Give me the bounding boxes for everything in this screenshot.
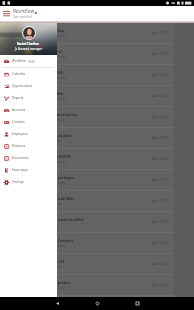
staticText: Question — [49, 265, 62, 269]
staticText: Opportunity — [49, 55, 66, 59]
staticText: Paper KT — [49, 259, 65, 264]
staticText: Jr. Account manager — [15, 47, 43, 51]
staticText: New project — [49, 280, 71, 285]
staticText: Employees — [12, 132, 28, 136]
staticText: Ann Hill — [49, 70, 63, 75]
button[interactable]: Paper KT — [0, 254, 174, 275]
button[interactable]: Marc Jacobst — [0, 128, 174, 149]
button[interactable]: Accounts — [0, 104, 57, 116]
staticText: Apr 14, 2016 — [152, 178, 170, 182]
staticText: Apr 14, 2016 — [152, 241, 170, 245]
staticText: Opportunities — [12, 84, 33, 88]
button[interactable]: Recent apps — [117, 297, 157, 310]
staticText: Bob Kim — [49, 91, 64, 96]
button[interactable]: Calendar — [0, 68, 57, 80]
staticText: New packages — [49, 175, 75, 180]
staticText: Opportunity — [49, 76, 66, 80]
button[interactable]: Anna ROOSE — [0, 149, 174, 170]
button[interactable]: Who made an offer? — [0, 212, 174, 233]
staticText: New Contract — [49, 238, 73, 243]
button[interactable]: Exam apps — [0, 164, 57, 176]
staticText: Rachel Charlton — [17, 42, 40, 46]
button[interactable]: Open navigation drawer — [0, 6, 13, 21]
button[interactable]: Resumes — [0, 140, 57, 152]
staticText: Apr 14, 2016 — [152, 283, 170, 287]
staticText: Accounts — [12, 108, 26, 112]
button[interactable]: Opportunities — [0, 80, 57, 92]
button[interactable]: Documents — [0, 152, 57, 164]
staticText: Contacts — [12, 120, 25, 124]
staticText: Opportunity — [49, 286, 66, 290]
staticText: Dell Incornation — [49, 112, 78, 117]
staticText: Workflow — [12, 59, 26, 63]
button[interactable]: Settings — [0, 176, 57, 188]
button[interactable]: Home — [77, 297, 117, 310]
staticText: Marc Jacobst — [49, 133, 72, 138]
button[interactable]: Deal with Nike — [0, 191, 174, 212]
staticText: Who made an offer? — [49, 217, 84, 222]
staticText: Apr 14, 2016 — [152, 199, 170, 203]
staticText: Opportunity — [49, 118, 66, 122]
staticText: Apr 14, 2016 — [152, 52, 170, 56]
button[interactable]: New packages — [0, 170, 174, 191]
staticText: Documents — [12, 156, 29, 160]
button[interactable]: Workflow — [0, 55, 57, 67]
staticText: Question — [49, 139, 62, 143]
staticText: Date modified — [13, 15, 32, 19]
staticText: Deal with Nike — [49, 196, 75, 201]
staticText: Apr 14, 2016 — [152, 262, 170, 266]
button[interactable]: Contacts — [0, 116, 57, 128]
button[interactable]: New project — [0, 275, 174, 296]
staticText: Settings — [12, 180, 24, 184]
button[interactable]: Follow up — [0, 296, 174, 297]
staticText: Calendar — [12, 72, 26, 76]
staticText: Mark Li — [49, 49, 63, 54]
staticText: Apr 14, 2016 — [152, 94, 170, 98]
staticText: Apr 14, 2016 — [152, 136, 170, 140]
staticText: Opportunity — [49, 181, 66, 185]
staticText: Jane Doe — [49, 28, 65, 33]
button[interactable]: Mark Li — [0, 44, 174, 65]
staticText: Reports — [12, 96, 24, 100]
staticText: Apr 14, 2016 — [152, 157, 170, 161]
button[interactable]: New Contract — [0, 233, 174, 254]
staticText: Opportunity — [49, 160, 66, 164]
button[interactable]: Ann Hill — [0, 65, 174, 86]
staticText: Anna ROOSE — [49, 154, 71, 159]
staticText: Apr 14, 2016 — [152, 115, 170, 119]
button[interactable]: Reports — [0, 92, 57, 104]
button[interactable]: Employees — [0, 128, 57, 140]
staticText: Opportunity — [49, 34, 66, 38]
button[interactable]: Back — [37, 297, 77, 310]
staticText: Question — [49, 202, 62, 206]
staticText: Exam apps — [12, 168, 28, 172]
staticText: Apr 14, 2016 — [152, 73, 170, 77]
staticText: Apr 14, 2016 — [152, 31, 170, 35]
staticText: 28 — [30, 60, 33, 63]
staticText: Inquiry — [49, 223, 59, 227]
button[interactable]: Dell Incornation — [0, 107, 174, 128]
button[interactable]: Bob Kim — [0, 86, 174, 107]
staticText: Resumes — [12, 144, 26, 148]
staticText: Opportunity — [49, 97, 66, 101]
staticText: Workflow — [13, 8, 35, 15]
button[interactable]: Jane Doe — [0, 23, 174, 44]
staticText: Opportunity — [49, 244, 66, 248]
staticText: Apr 14, 2016 — [152, 220, 170, 224]
